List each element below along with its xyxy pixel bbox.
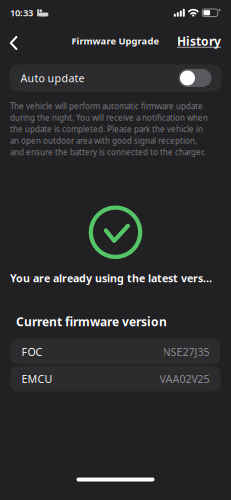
- staticText: The vehicle will perform automatic firmw…: [10, 101, 203, 111]
- staticText: 10:33: [10, 7, 33, 19]
- staticText: an open outdoor area with good signal re…: [10, 135, 197, 146]
- staticText: History: [177, 33, 221, 49]
- staticText: You are already using the latest vers…: [10, 271, 212, 285]
- staticText: and ensure the battery is connected to t…: [10, 147, 205, 157]
- button[interactable]: Auto update: [9, 64, 221, 91]
- staticText: Firmware Upgrade: [71, 35, 159, 47]
- staticText: during the night. You will receive a not…: [10, 112, 208, 123]
- button[interactable]: Back: [0, 29, 18, 53]
- staticText: Current firmware version: [16, 313, 167, 329]
- staticText: NSE27J35: [162, 345, 209, 359]
- staticText: VAA02V25: [159, 372, 209, 386]
- staticText: the update is completed. Please park the…: [10, 124, 203, 134]
- staticText: EMCU: [21, 372, 52, 386]
- staticText: Auto update: [20, 71, 84, 85]
- button[interactable]: History: [177, 29, 231, 53]
- staticText: FOC: [21, 345, 42, 359]
